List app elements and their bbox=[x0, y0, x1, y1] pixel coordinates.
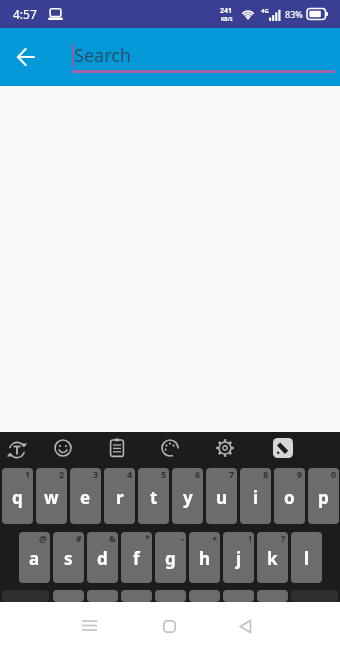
button[interactable] bbox=[8, 39, 44, 75]
staticText: q bbox=[12, 486, 23, 509]
staticText: 0 bbox=[331, 468, 337, 480]
staticText: 6 bbox=[195, 468, 201, 480]
staticText: 241 bbox=[220, 6, 233, 16]
button[interactable] bbox=[257, 590, 288, 602]
staticText: h bbox=[199, 547, 211, 570]
staticText: g bbox=[165, 547, 176, 570]
staticText: 8 bbox=[263, 468, 269, 480]
staticText: j bbox=[236, 547, 242, 570]
staticText: 4 bbox=[127, 468, 133, 480]
button[interactable] bbox=[223, 590, 254, 602]
staticText: 5 bbox=[161, 468, 167, 480]
button[interactable] bbox=[53, 590, 84, 602]
button[interactable]: o bbox=[274, 468, 305, 524]
button[interactable]: g bbox=[155, 532, 186, 583]
button[interactable]: l bbox=[291, 532, 322, 583]
staticText: 9 bbox=[297, 468, 303, 480]
button[interactable]: r bbox=[104, 468, 135, 524]
button[interactable]: q bbox=[2, 468, 33, 524]
staticText: @ bbox=[39, 532, 48, 544]
staticText: ? bbox=[281, 532, 286, 544]
button[interactable] bbox=[267, 432, 299, 464]
staticText: e bbox=[80, 486, 91, 509]
button[interactable]: h bbox=[189, 532, 220, 583]
button[interactable] bbox=[87, 590, 118, 602]
button[interactable]: y bbox=[172, 468, 203, 524]
button[interactable]: k bbox=[257, 532, 288, 583]
button[interactable] bbox=[153, 612, 185, 640]
button[interactable]: d bbox=[87, 532, 118, 583]
staticText: 83% bbox=[285, 8, 303, 20]
button[interactable] bbox=[1, 434, 33, 466]
staticText: - bbox=[181, 532, 184, 544]
button[interactable]: s bbox=[53, 532, 84, 583]
staticText: o bbox=[284, 486, 295, 509]
staticText: t bbox=[150, 486, 158, 509]
staticText: k bbox=[267, 547, 278, 570]
button[interactable]: u bbox=[206, 468, 237, 524]
button[interactable] bbox=[47, 432, 79, 464]
button[interactable] bbox=[155, 590, 186, 602]
staticText: p bbox=[318, 486, 329, 509]
staticText: y bbox=[183, 486, 193, 509]
button[interactable]: j bbox=[223, 532, 254, 583]
staticText: s bbox=[64, 547, 73, 570]
button[interactable]: Search bbox=[72, 28, 335, 86]
staticText: 2 bbox=[59, 468, 65, 480]
staticText: & bbox=[109, 532, 116, 544]
button[interactable]: e bbox=[70, 468, 101, 524]
staticText: 1 bbox=[25, 468, 31, 480]
staticText: 4:57 bbox=[13, 6, 37, 22]
staticText: l bbox=[304, 547, 310, 570]
staticText: 3 bbox=[93, 468, 99, 480]
staticText: r bbox=[116, 486, 124, 509]
staticText: ! bbox=[249, 532, 252, 544]
button[interactable] bbox=[154, 432, 186, 464]
button[interactable]: w bbox=[36, 468, 67, 524]
staticText: 7 bbox=[229, 468, 235, 480]
staticText: u bbox=[216, 486, 228, 509]
staticText: a bbox=[29, 547, 40, 570]
button[interactable] bbox=[121, 590, 152, 602]
button[interactable] bbox=[101, 432, 133, 464]
button[interactable] bbox=[209, 432, 241, 464]
button[interactable] bbox=[73, 612, 105, 640]
button[interactable] bbox=[229, 612, 261, 640]
button[interactable]: f bbox=[121, 532, 152, 583]
staticText: + bbox=[212, 532, 218, 544]
button[interactable]: p bbox=[308, 468, 339, 524]
staticText: # bbox=[76, 532, 82, 544]
staticText: Search bbox=[74, 43, 131, 68]
staticText: f bbox=[133, 547, 140, 570]
staticText: * bbox=[145, 532, 150, 544]
staticText: KB/S bbox=[221, 16, 233, 23]
staticText: i bbox=[253, 486, 259, 509]
staticText: w bbox=[44, 486, 59, 509]
button[interactable]: t bbox=[138, 468, 169, 524]
button[interactable]: a bbox=[19, 532, 50, 583]
button[interactable]: i bbox=[240, 468, 271, 524]
button[interactable] bbox=[189, 590, 220, 602]
staticText: 4G bbox=[261, 7, 269, 15]
staticText: d bbox=[97, 547, 108, 570]
